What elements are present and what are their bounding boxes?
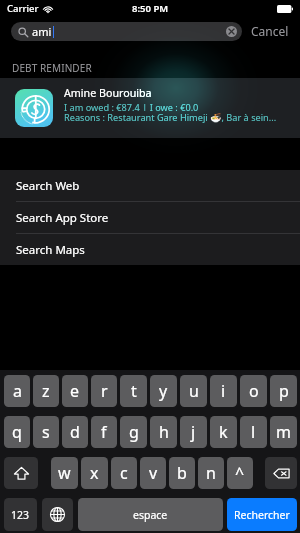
button[interactable]: v [140, 457, 166, 489]
button[interactable]: j [180, 416, 207, 448]
button[interactable]: Amine Bourouiba [0, 78, 300, 138]
staticText: a [13, 380, 22, 402]
staticText: z [42, 380, 50, 402]
button[interactable]: Change keyboard [42, 498, 73, 531]
button[interactable]: w [51, 457, 78, 489]
button[interactable]: f [91, 416, 117, 448]
staticText: w [58, 462, 71, 484]
staticText: 123 [11, 508, 30, 522]
staticText: q [12, 421, 22, 443]
button[interactable]: p [270, 375, 297, 407]
button[interactable]: Shift [4, 457, 38, 489]
staticText: ami [32, 24, 52, 39]
staticText: Cancel [251, 23, 289, 39]
button[interactable]: Rechercher [227, 498, 297, 531]
staticText: s [42, 421, 50, 443]
staticText: DEBT REMINDER [12, 61, 92, 75]
button[interactable]: Clear text [226, 26, 237, 37]
button[interactable]: r [91, 375, 117, 407]
staticText: g [129, 421, 139, 443]
button[interactable]: Cancel [251, 23, 289, 39]
staticText: c [120, 462, 128, 484]
button[interactable]: q [4, 416, 30, 448]
staticText: x [90, 462, 99, 484]
staticText: Amine Bourouiba [64, 86, 152, 101]
staticText: Carrier [7, 2, 39, 15]
button[interactable]: b [169, 457, 195, 489]
button[interactable]: a [4, 375, 30, 407]
staticText: y [159, 380, 168, 402]
button[interactable]: Search App Store [0, 202, 300, 233]
button[interactable]: e [62, 375, 88, 407]
button[interactable]: y [150, 375, 177, 407]
button[interactable]: n [198, 457, 224, 489]
button[interactable]: x [81, 457, 108, 489]
staticText: o [249, 380, 259, 402]
staticText: f [101, 421, 107, 443]
staticText: Search Web [16, 178, 80, 194]
button[interactable]: g [120, 416, 147, 448]
staticText: p [279, 380, 289, 402]
button[interactable]: ami [11, 22, 242, 41]
staticText: d [70, 421, 80, 443]
staticText: h [159, 421, 169, 443]
staticText: e [70, 380, 80, 402]
button[interactable]: t [120, 375, 147, 407]
button[interactable]: k [210, 416, 237, 448]
staticText: b [177, 462, 187, 484]
staticText: r [101, 380, 108, 402]
button[interactable]: Search Web [0, 170, 300, 201]
button[interactable]: u [180, 375, 207, 407]
button[interactable]: i [210, 375, 237, 407]
staticText: 8:50 PM [132, 2, 169, 15]
staticText: Search Maps [16, 242, 85, 258]
button[interactable]: z [33, 375, 59, 407]
staticText: j [191, 421, 196, 443]
button[interactable]: c [111, 457, 137, 489]
button[interactable]: espace [78, 498, 223, 531]
button[interactable]: m [270, 416, 297, 448]
staticText: u [189, 380, 199, 402]
staticText: n [206, 462, 216, 484]
button[interactable]: s [33, 416, 59, 448]
staticText: I am owed : €87.4 | I owe : €0.0 [64, 101, 199, 111]
staticText: m [276, 421, 291, 443]
staticText: i [221, 380, 226, 402]
staticText: Reasons : Restaurant Gare Himeji 🍜, Bar … [64, 111, 277, 124]
staticText: v [149, 462, 158, 484]
staticText: l [251, 421, 256, 443]
button[interactable]: Search Maps [0, 234, 300, 265]
button[interactable]: d [62, 416, 88, 448]
button[interactable]: l [240, 416, 267, 448]
staticText: espace [133, 508, 168, 522]
button[interactable]: ^ [227, 457, 253, 489]
staticText: t [131, 380, 137, 402]
button[interactable]: 123 [4, 498, 37, 531]
button[interactable]: o [240, 375, 267, 407]
staticText: k [219, 421, 228, 443]
button[interactable]: h [150, 416, 177, 448]
staticText: Rechercher [234, 508, 290, 522]
staticText: Search App Store [16, 210, 109, 226]
button[interactable]: Backspace [265, 457, 297, 489]
staticText: ^ [235, 462, 245, 484]
